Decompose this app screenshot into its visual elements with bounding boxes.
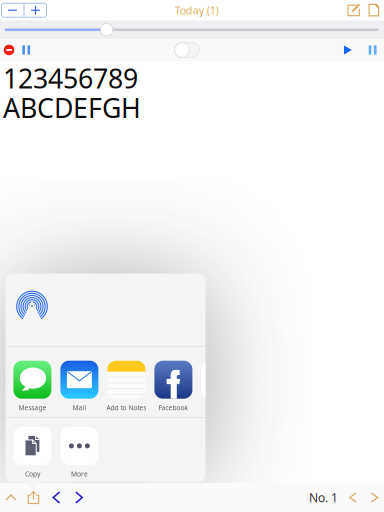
button[interactable]: Previous page [346, 483, 359, 512]
button[interactable]: Previous [49, 483, 63, 512]
button[interactable]: Next [72, 483, 86, 512]
staticText: ABCDEFGH [3, 90, 141, 125]
button[interactable]: Add to Notes [103, 361, 150, 413]
button[interactable] [197, 361, 244, 413]
staticText: Message [18, 403, 46, 412]
button[interactable]: Pause recording [22, 45, 30, 55]
button[interactable]: Mail [56, 361, 103, 413]
staticText: Today (1) [175, 3, 219, 17]
button[interactable]: Toggle [174, 42, 199, 57]
button[interactable]: Pause playback [369, 45, 376, 55]
button[interactable]: New document [368, 3, 380, 17]
button[interactable]: Stop [4, 45, 14, 55]
staticText: 123456789 [3, 60, 138, 96]
staticText: Facebook [158, 403, 188, 412]
button[interactable]: Copy [9, 427, 56, 479]
button[interactable]: Share [25, 483, 41, 512]
staticText: Copy [25, 469, 40, 478]
button[interactable]: Play [344, 45, 352, 54]
button[interactable]: Message [9, 361, 56, 413]
staticText: Mail [72, 403, 86, 412]
button[interactable]: More [56, 427, 103, 479]
button[interactable]: Next page [368, 483, 381, 512]
button[interactable]: Zoom out or in [1, 3, 46, 17]
button[interactable]: Compose [347, 3, 361, 17]
button[interactable]: Facebook [150, 361, 197, 413]
staticText: Add to Notes [106, 403, 146, 412]
staticText: No. 1 [309, 489, 338, 505]
button[interactable]: Scroll up [2, 483, 20, 512]
staticText: More [71, 469, 88, 478]
button[interactable]: AirDrop [16, 290, 48, 322]
